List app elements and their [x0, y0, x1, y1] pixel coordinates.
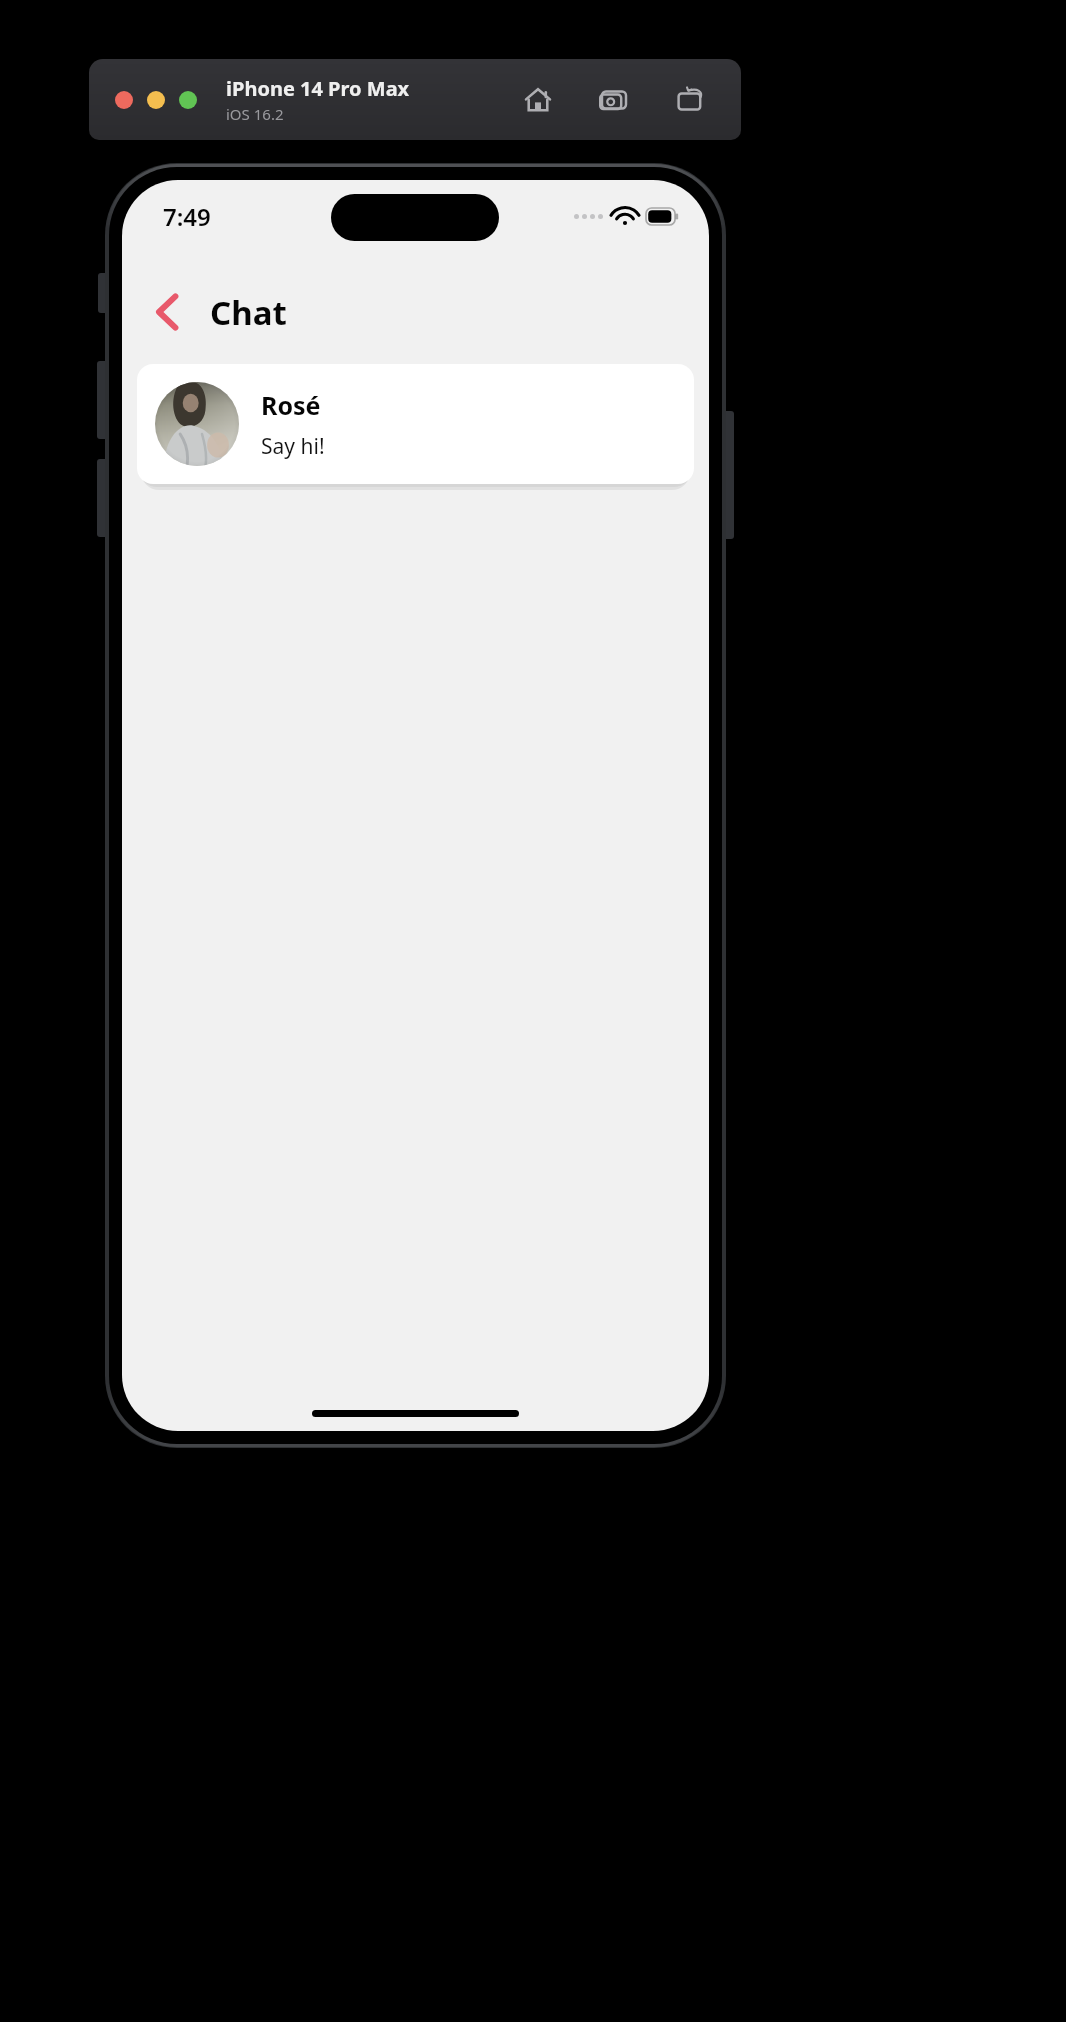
button[interactable]: Home: [517, 79, 559, 121]
staticText: iPhone 14 Pro Max: [226, 75, 410, 102]
button[interactable]: Screenshot: [593, 79, 635, 121]
button[interactable]: Record screen: [669, 79, 711, 121]
button[interactable]: Zoom: [179, 91, 197, 109]
staticText: Rosé: [261, 388, 321, 422]
button[interactable]: Minimize: [147, 91, 165, 109]
button[interactable]: Rosé: [137, 364, 694, 484]
staticText: Say hi!: [261, 432, 325, 461]
staticText: 7:49: [163, 200, 211, 233]
staticText: Chat: [210, 290, 287, 335]
staticText: iOS 16.2: [226, 104, 284, 124]
button[interactable]: Back: [144, 289, 190, 335]
button[interactable]: Close: [115, 91, 133, 109]
